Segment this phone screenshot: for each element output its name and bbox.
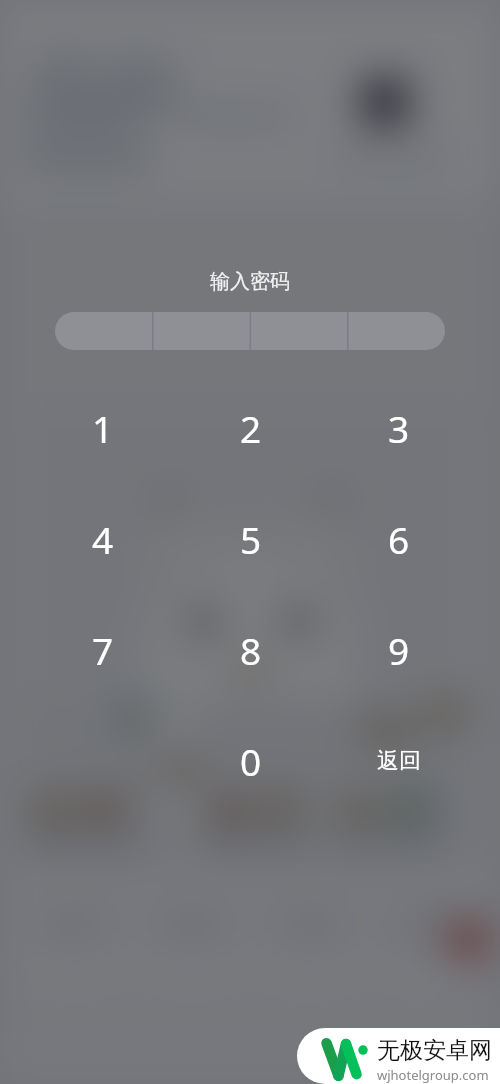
staticText: 0 <box>240 736 262 786</box>
button[interactable]: Digit 0 <box>177 705 325 816</box>
button[interactable]: Back <box>325 705 473 816</box>
button[interactable]: Digit 3 <box>325 372 473 483</box>
staticText: 3 <box>388 403 410 453</box>
button[interactable]: Digit 2 <box>177 372 325 483</box>
button[interactable]: Password field <box>55 312 445 350</box>
button[interactable]: Digit 5 <box>177 483 325 594</box>
staticText: 2 <box>240 403 262 453</box>
button[interactable]: Digit 1 <box>28 372 177 483</box>
staticText: 7 <box>92 625 114 675</box>
staticText: 无极安卓网 <box>377 1036 492 1065</box>
staticText: 1 <box>92 403 114 453</box>
staticText: 6 <box>388 514 410 564</box>
button[interactable]: Digit 8 <box>177 594 325 705</box>
staticText: 返回 <box>377 747 421 775</box>
staticText: 9 <box>388 625 410 675</box>
button[interactable]: Digit 4 <box>28 483 177 594</box>
staticText: wjhotelgroup.com <box>377 1066 489 1084</box>
button[interactable]: Digit 9 <box>325 594 473 705</box>
button[interactable]: Digit 6 <box>325 483 473 594</box>
button[interactable]: Digit 7 <box>28 594 177 705</box>
staticText: 5 <box>240 514 262 564</box>
staticText: 输入密码 <box>0 269 500 294</box>
staticText: 4 <box>92 514 114 564</box>
staticText: 8 <box>240 625 262 675</box>
